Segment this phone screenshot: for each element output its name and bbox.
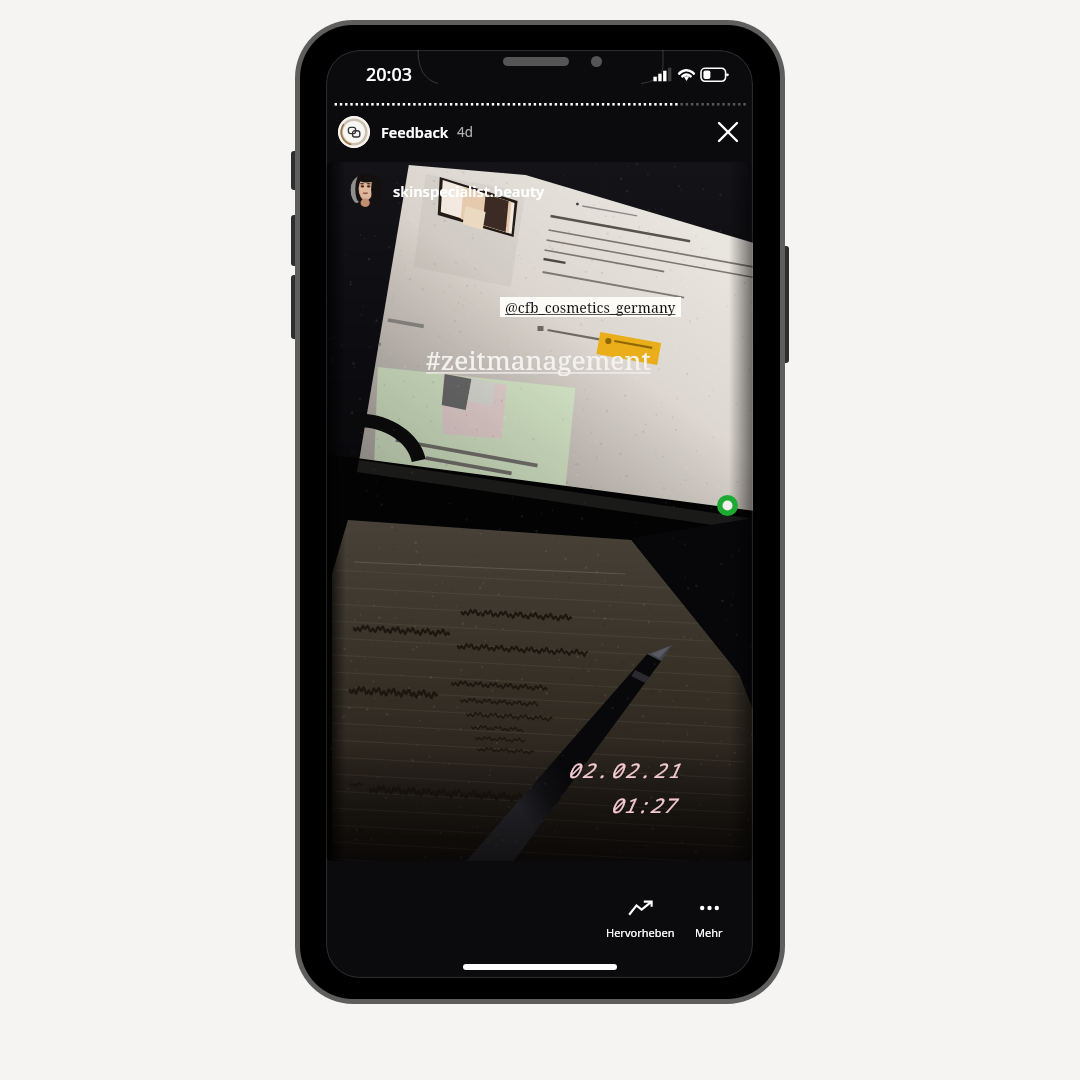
- button[interactable]: Hervorheben: [597, 897, 683, 943]
- staticText: Mehr: [695, 925, 723, 940]
- button[interactable]: Feedback: [338, 116, 478, 148]
- staticText: @cfb_cosmetics_germany: [505, 298, 676, 317]
- button[interactable]: skinspecialist.beauty: [350, 174, 551, 207]
- staticText: #zeitmanagement: [426, 342, 651, 378]
- staticText: 20:03: [366, 62, 413, 87]
- staticText: Hervorheben: [606, 925, 675, 940]
- staticText: skinspecialist.beauty: [393, 181, 545, 201]
- button[interactable]: Mehr: [683, 897, 735, 943]
- staticText: 4d: [457, 123, 474, 141]
- staticText: 01:27: [610, 792, 675, 819]
- staticText: 02.02.21: [567, 757, 682, 784]
- staticText: Feedback: [381, 122, 449, 142]
- button[interactable]: Close: [710, 114, 746, 150]
